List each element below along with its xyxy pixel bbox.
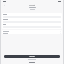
- button[interactable]: Back: [3, 4, 5, 6]
- staticText: Account: [29, 4, 35, 6]
- button[interactable]: [3, 19, 61, 23]
- button[interactable]: [3, 14, 61, 18]
- button[interactable]: [3, 24, 61, 28]
- button[interactable]: [2, 30, 62, 32]
- button[interactable]: Continue: [4, 55, 60, 58]
- button[interactable]: [2, 32, 62, 34]
- staticText: Continue: [29, 56, 35, 58]
